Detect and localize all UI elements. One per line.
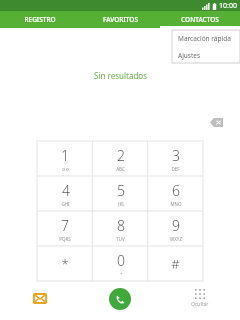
button[interactable]: Marcación rápida [172, 30, 240, 47]
staticText: CONTACTOS [181, 15, 219, 24]
staticText: Marcación rápida [178, 34, 231, 43]
staticText: DEF [171, 166, 180, 172]
button[interactable]: 9 [148, 211, 203, 246]
staticText: JKL [118, 201, 125, 207]
staticText: 6 [172, 181, 180, 200]
staticText: Ajustes [178, 51, 201, 60]
staticText: * [61, 255, 69, 273]
button[interactable]: 5 [93, 176, 148, 211]
button[interactable]: 4 [37, 176, 93, 211]
button[interactable]: Ocultar teclado [160, 282, 240, 315]
button[interactable]: CONTACTOS [160, 11, 240, 28]
staticText: 0 [117, 251, 125, 270]
staticText: GHI [61, 201, 70, 207]
button[interactable]: 2 [93, 141, 148, 176]
button[interactable]: Ajustes [172, 47, 240, 63]
staticText: 10:00 [219, 1, 237, 11]
staticText: 3 [172, 146, 180, 165]
button[interactable]: 8 [93, 211, 148, 246]
staticText: FAVORITOS [103, 15, 138, 24]
button[interactable]: Mensaje [0, 282, 80, 315]
staticText: o o [62, 166, 69, 172]
button[interactable]: 1 [37, 141, 93, 176]
staticText: WXYZ [170, 236, 182, 242]
staticText: PQRS [59, 236, 71, 242]
button[interactable]: FAVORITOS [80, 11, 160, 28]
staticText: 1 [61, 146, 69, 165]
button[interactable]: 0 [93, 246, 148, 281]
staticText: # [171, 255, 180, 273]
button[interactable]: # [148, 246, 203, 281]
button[interactable]: 7 [37, 211, 93, 246]
button[interactable]: 6 [148, 176, 203, 211]
staticText: MNO [170, 201, 182, 207]
staticText: 5 [117, 181, 125, 200]
staticText: 7 [61, 216, 69, 235]
staticText: Sin resultados [94, 70, 147, 81]
staticText: + [120, 271, 123, 277]
staticText: 9 [172, 216, 180, 235]
staticText: Ocultar [191, 301, 209, 308]
staticText: REGISTRO [24, 15, 56, 24]
button[interactable]: Borrar [206, 114, 226, 130]
button[interactable]: * [37, 246, 93, 281]
button[interactable]: Llamar [80, 282, 160, 315]
staticText: 8 [117, 216, 125, 235]
staticText: 4 [62, 181, 70, 200]
button[interactable]: 3 [148, 141, 203, 176]
staticText: 2 [117, 146, 125, 165]
button[interactable]: REGISTRO [0, 11, 80, 28]
staticText: TUV [116, 236, 125, 242]
staticText: ABC [116, 166, 125, 172]
